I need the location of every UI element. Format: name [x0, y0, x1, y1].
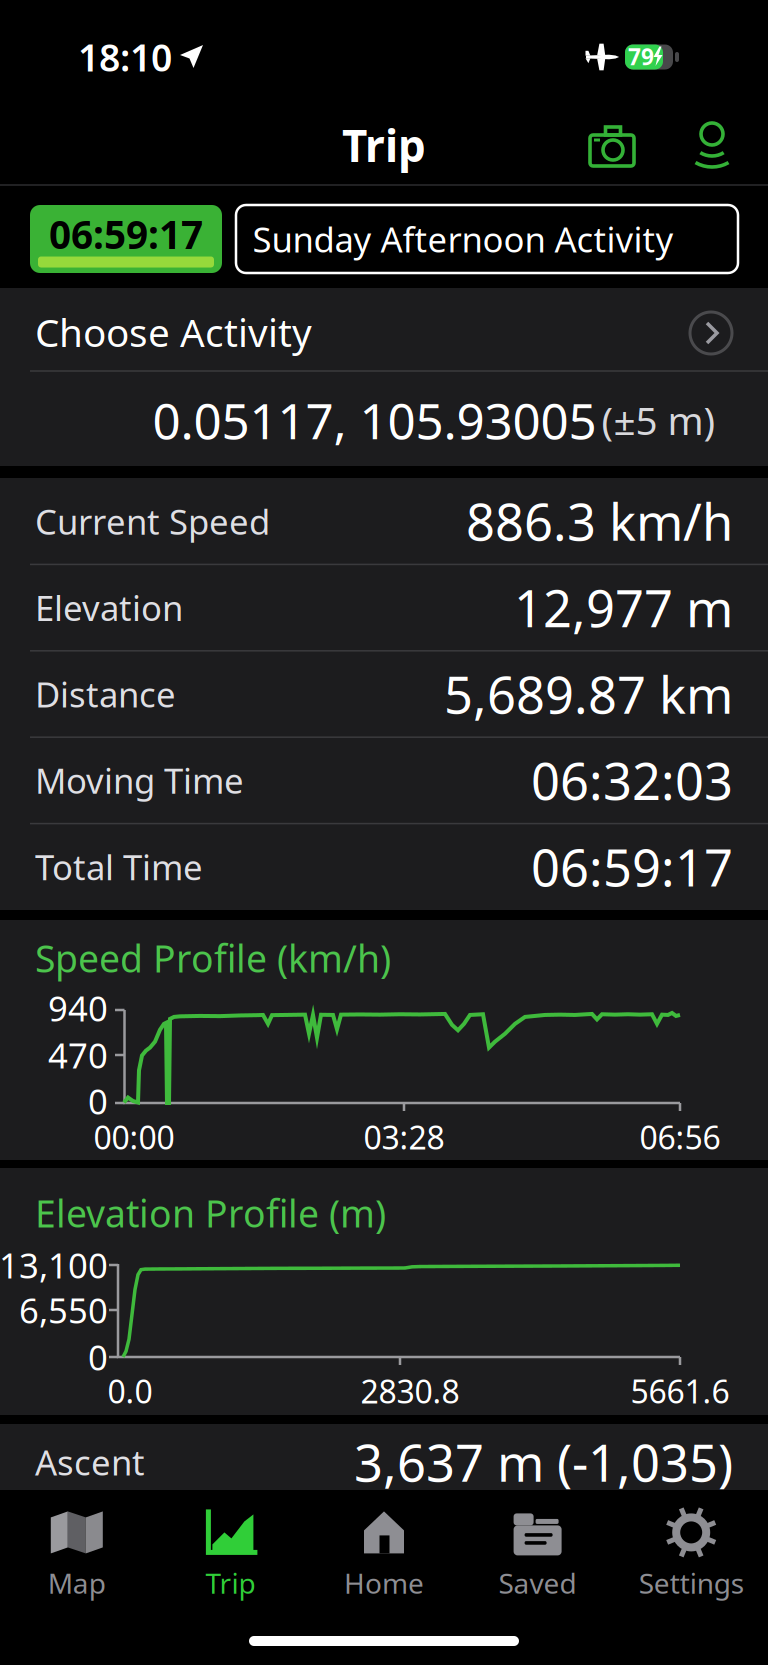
button[interactable]: Choose Activity — [0, 288, 768, 371]
staticText: 5,689.87 km — [444, 660, 733, 728]
staticText: 0.05117, 105.93005 — [152, 387, 596, 453]
staticText: Elevation Profile (m) — [35, 1188, 386, 1238]
staticText: Home — [344, 1564, 424, 1602]
staticText: 5661.6 — [630, 1370, 729, 1412]
button[interactable]: Home — [307, 1500, 461, 1610]
staticText: Trip — [342, 116, 426, 174]
staticText: 470 — [48, 1032, 108, 1078]
staticText: 03:28 — [363, 1116, 444, 1158]
staticText: 79 — [628, 41, 654, 71]
staticText: 3,637 m (-1,035) — [354, 1428, 733, 1496]
button[interactable]: Map — [0, 1500, 154, 1610]
staticText: Map — [48, 1564, 106, 1602]
staticText: 6,550 — [19, 1287, 108, 1333]
button[interactable] — [590, 126, 634, 166]
button[interactable] — [686, 116, 738, 170]
staticText: 0 — [88, 1334, 108, 1380]
staticText: 06:59:17 — [531, 833, 733, 900]
staticText: (±5 m) — [601, 394, 715, 446]
staticText: Total Time — [35, 844, 203, 890]
staticText: Distance — [35, 671, 176, 717]
button[interactable]: Saved — [461, 1500, 614, 1610]
staticText: Ascent — [35, 1439, 145, 1485]
staticText: 886.3 km/h — [466, 488, 733, 555]
button[interactable]: Settings — [614, 1500, 768, 1610]
staticText: 18:10 — [78, 32, 172, 82]
button[interactable]: Sunday Afternoon Activity — [236, 205, 738, 273]
staticText: 940 — [48, 985, 108, 1031]
staticText: 13,100 — [0, 1242, 108, 1288]
staticText: Sunday Afternoon Activity — [252, 216, 673, 262]
staticText: 06:32:03 — [531, 747, 733, 814]
staticText: 12,977 m — [514, 574, 733, 641]
staticText: Moving Time — [35, 757, 244, 803]
staticText: 2830.8 — [360, 1370, 459, 1412]
staticText: Saved — [499, 1564, 577, 1602]
staticText: 00:00 — [93, 1116, 174, 1158]
button[interactable]: Trip — [154, 1500, 307, 1610]
staticText: Current Speed — [35, 498, 270, 544]
staticText: Choose Activity — [35, 306, 312, 358]
staticText: 06:56 — [639, 1116, 720, 1158]
staticText: Trip — [205, 1564, 255, 1602]
staticText: 0.0 — [107, 1370, 152, 1412]
staticText: 06:59:17 — [49, 208, 203, 260]
staticText: 0 — [88, 1078, 108, 1124]
staticText: Elevation — [35, 585, 183, 631]
staticText: Settings — [639, 1564, 744, 1602]
staticText: Speed Profile (km/h) — [35, 933, 391, 983]
button[interactable]: 06:59:17 — [30, 205, 222, 273]
